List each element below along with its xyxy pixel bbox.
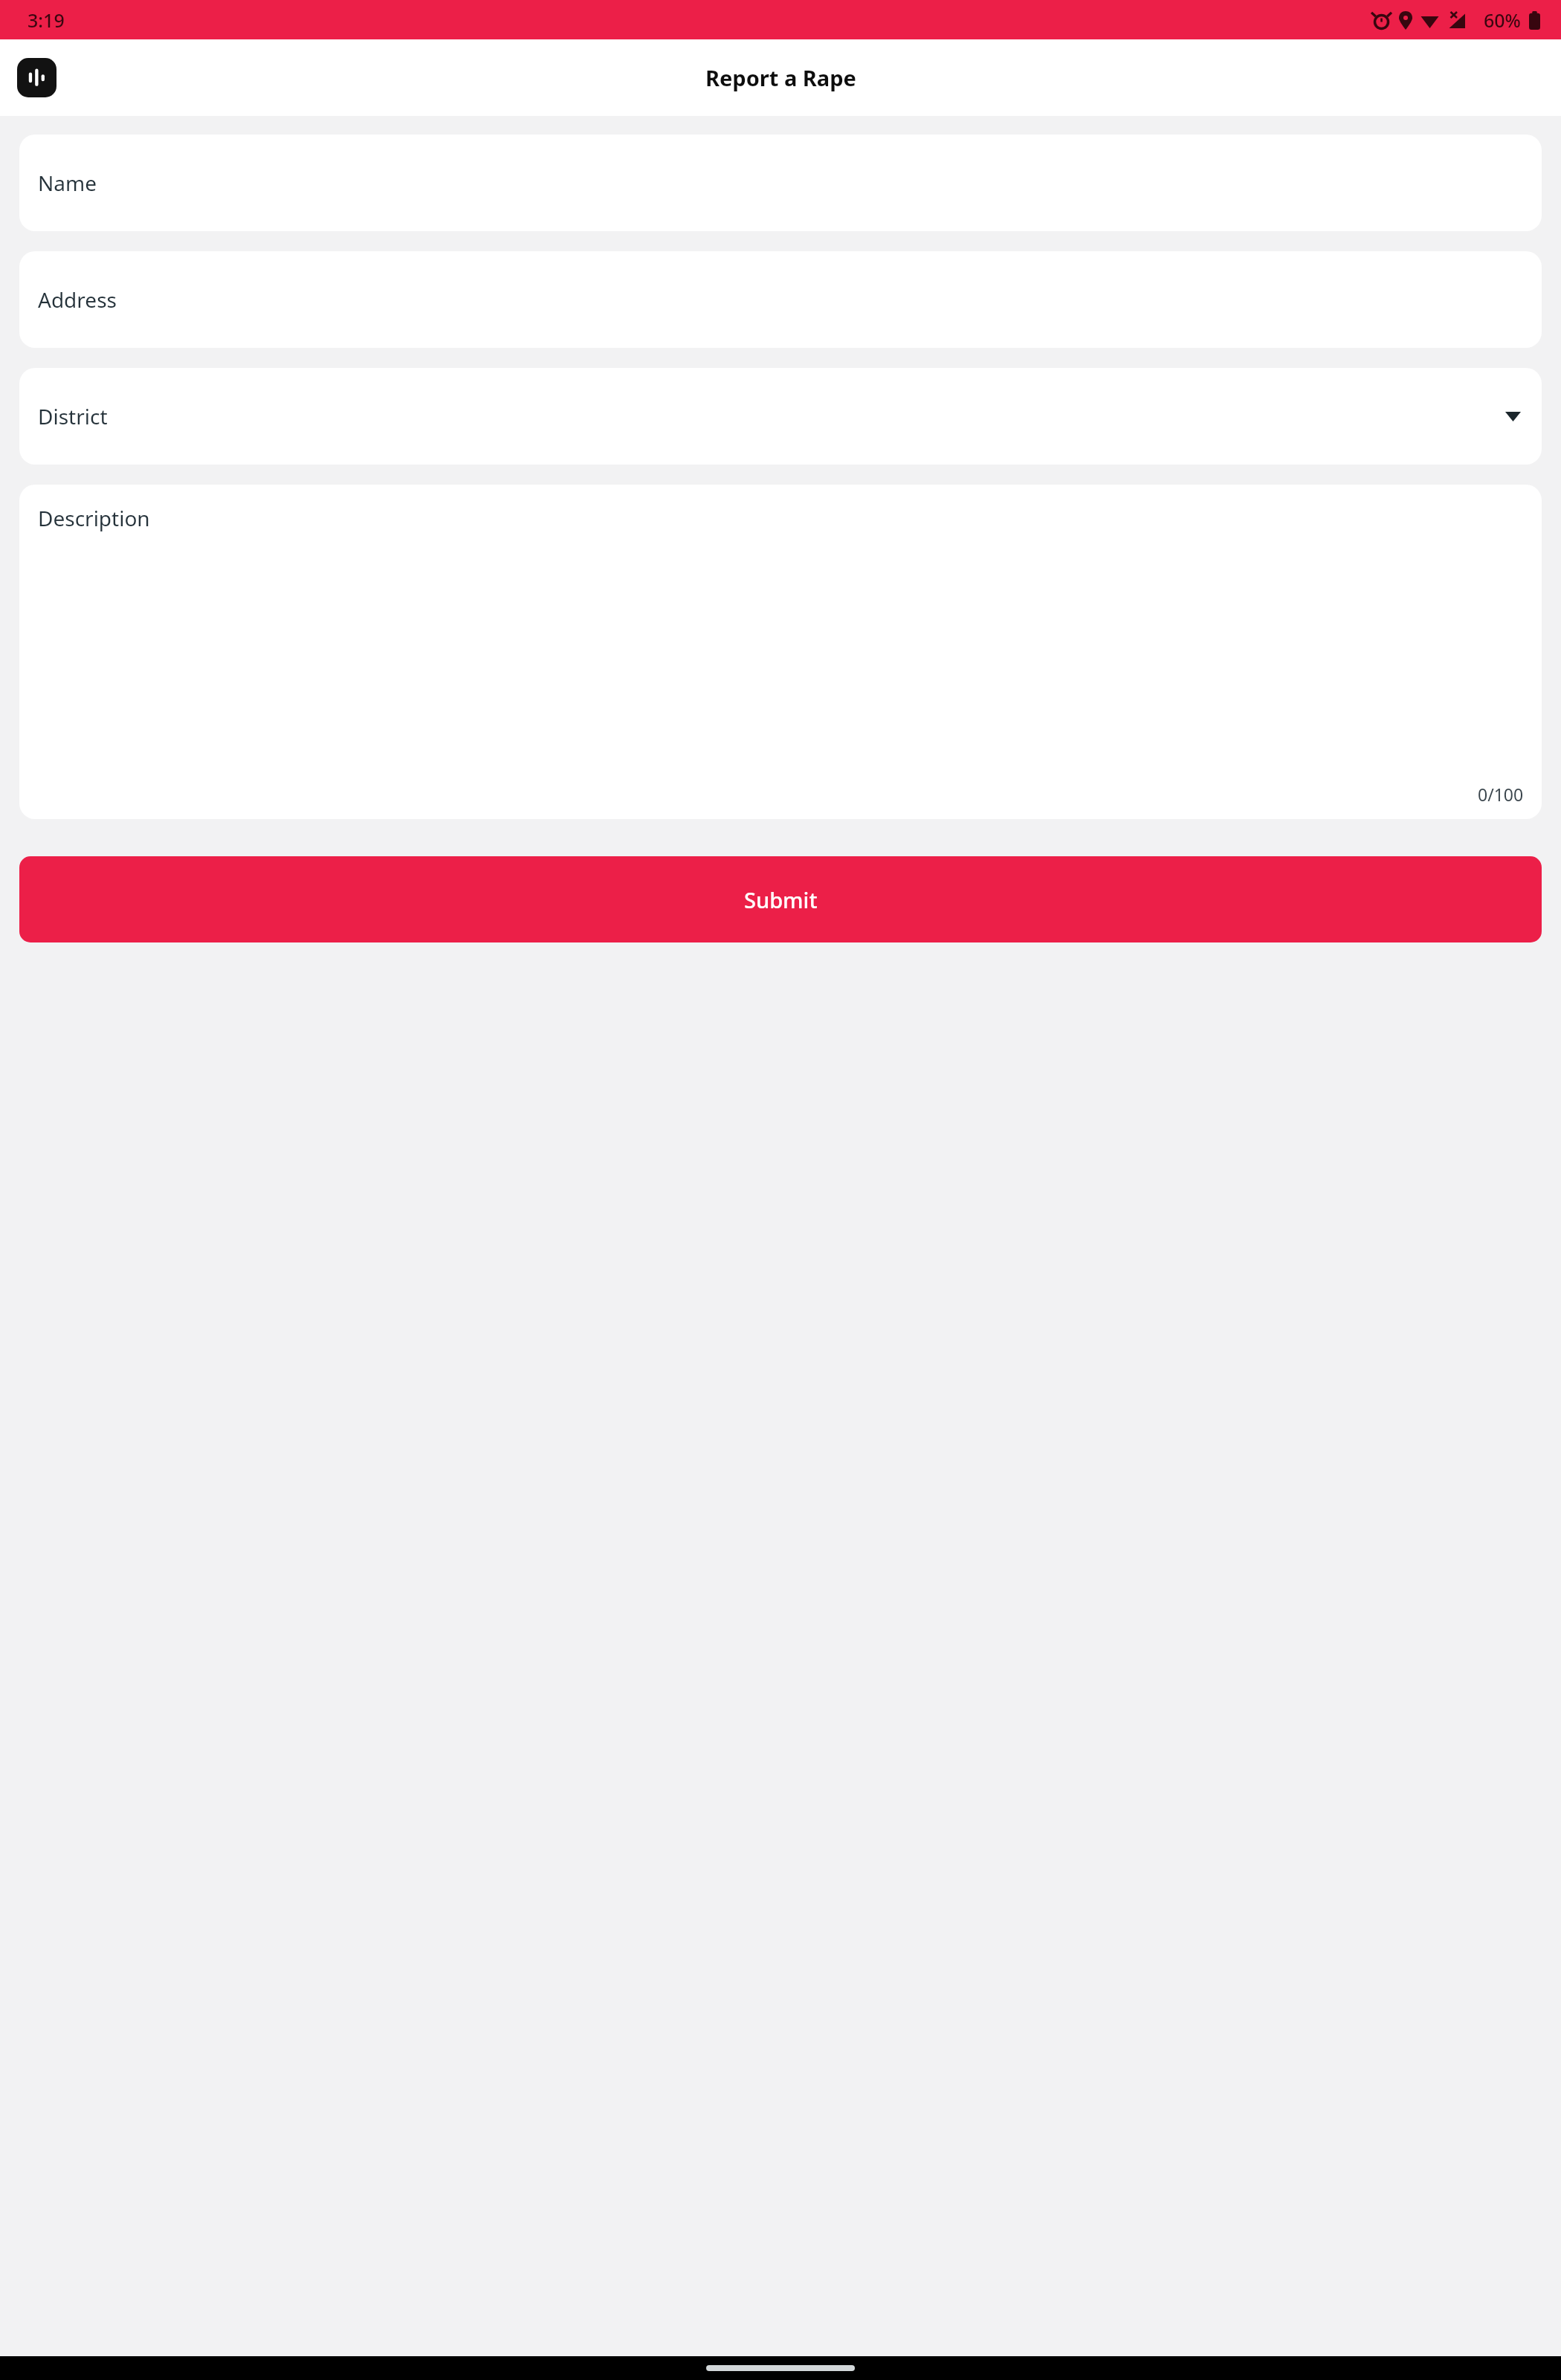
staticText: District bbox=[38, 402, 108, 430]
button[interactable]: App logo bbox=[17, 58, 56, 97]
staticText: Address bbox=[38, 285, 117, 314]
button[interactable]: Description bbox=[19, 485, 1542, 819]
other: Select district bbox=[1505, 412, 1521, 421]
staticText: 60% bbox=[1484, 7, 1521, 33]
staticText: Name bbox=[38, 169, 97, 197]
button[interactable]: Address bbox=[19, 251, 1542, 348]
staticText: Description bbox=[38, 504, 150, 532]
button[interactable]: Submit bbox=[19, 856, 1542, 942]
staticText: 0/100 bbox=[1478, 783, 1524, 806]
staticText: Report a Rape bbox=[705, 63, 856, 92]
button[interactable]: District bbox=[19, 368, 1542, 465]
staticText: Submit bbox=[744, 885, 818, 914]
staticText: 3:19 bbox=[28, 7, 65, 33]
button[interactable]: Name bbox=[19, 135, 1542, 231]
